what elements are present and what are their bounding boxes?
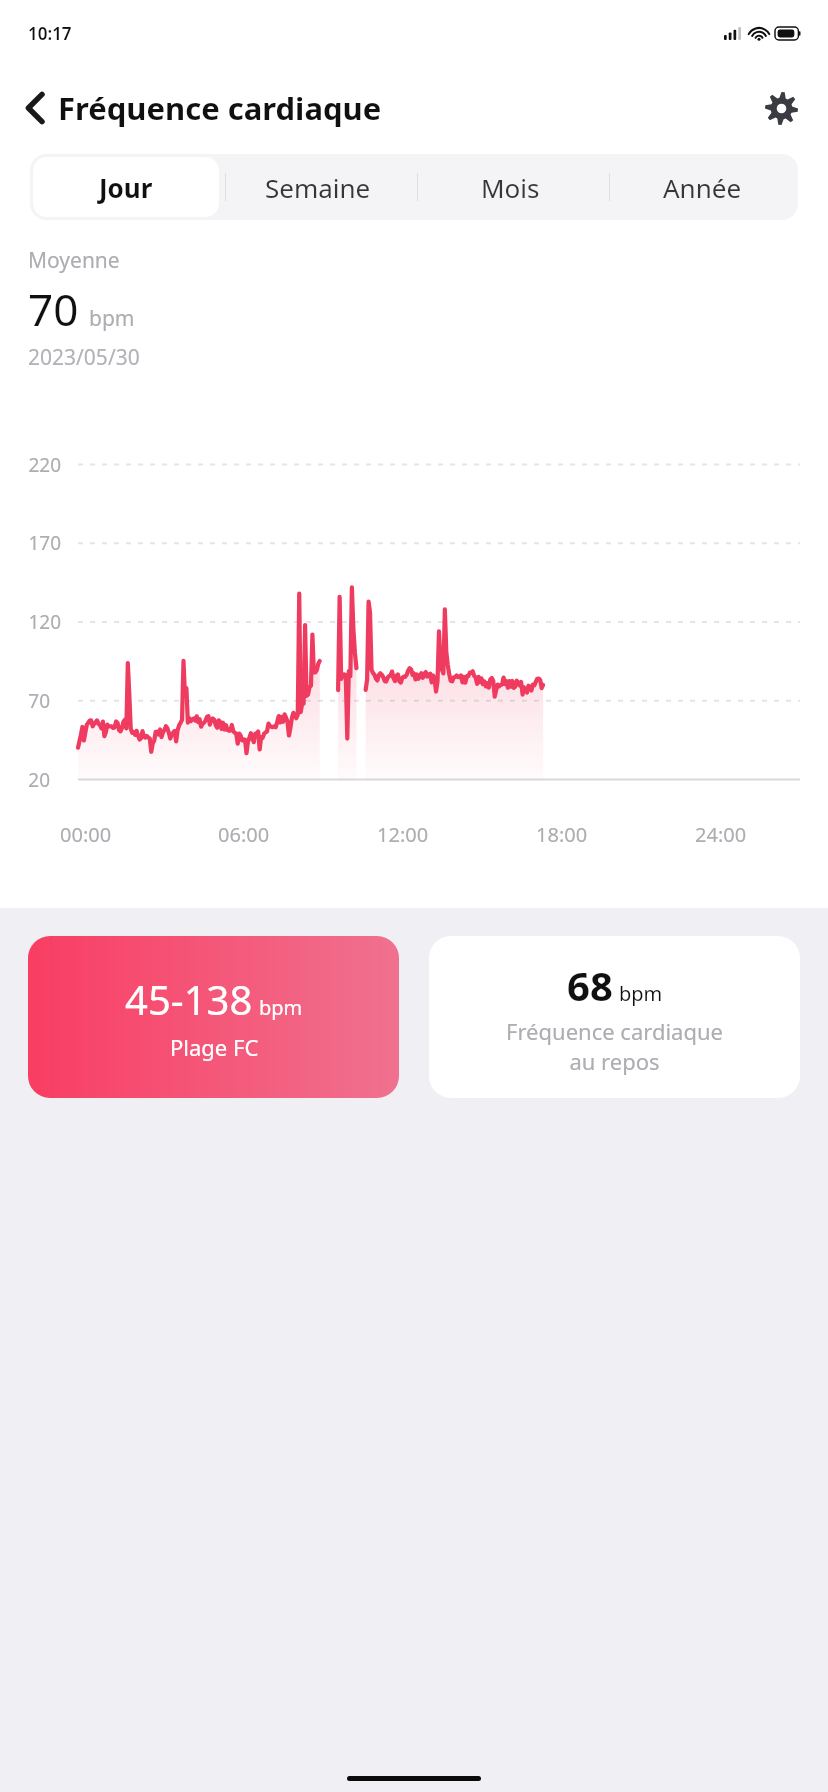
button[interactable]: Back	[22, 81, 386, 135]
staticText: 24:00	[695, 821, 747, 848]
button[interactable]: 45-138	[28, 936, 399, 1098]
button[interactable]: Année	[609, 157, 795, 217]
button[interactable]: 68	[429, 936, 800, 1098]
staticText: 20	[28, 767, 50, 793]
button[interactable]: Jour	[33, 157, 219, 217]
staticText: 10:17	[28, 22, 72, 45]
staticText: 00:00	[60, 821, 112, 848]
staticText: 120	[28, 609, 61, 635]
staticText: 45-138	[125, 972, 253, 1026]
button[interactable]: Mois	[417, 157, 603, 217]
button[interactable]: Semaine	[225, 157, 411, 217]
staticText: Plage FC	[170, 1032, 259, 1062]
staticText: bpm	[619, 980, 663, 1007]
staticText: Semaine	[265, 170, 371, 205]
staticText: bpm	[89, 304, 135, 333]
staticText: 12:00	[377, 821, 429, 848]
staticText: Moyenne	[28, 246, 120, 275]
staticText: 18:00	[536, 821, 588, 848]
staticText: 70	[28, 279, 79, 339]
staticText: 170	[28, 530, 61, 556]
staticText: bpm	[259, 994, 303, 1021]
staticText: Mois	[481, 170, 540, 205]
staticText: Fréquence cardiaque au repos	[506, 1016, 723, 1076]
staticText: Année	[663, 170, 742, 205]
staticText: 06:00	[218, 821, 270, 848]
staticText: Jour	[99, 170, 153, 205]
staticText: 68	[567, 958, 613, 1012]
staticText: 2023/05/30	[28, 343, 140, 372]
staticText: 70	[28, 688, 50, 714]
staticText: 220	[28, 452, 61, 478]
other: Back	[26, 91, 46, 125]
button[interactable]: Settings	[757, 84, 806, 133]
staticText: Fréquence cardiaque	[58, 87, 382, 129]
